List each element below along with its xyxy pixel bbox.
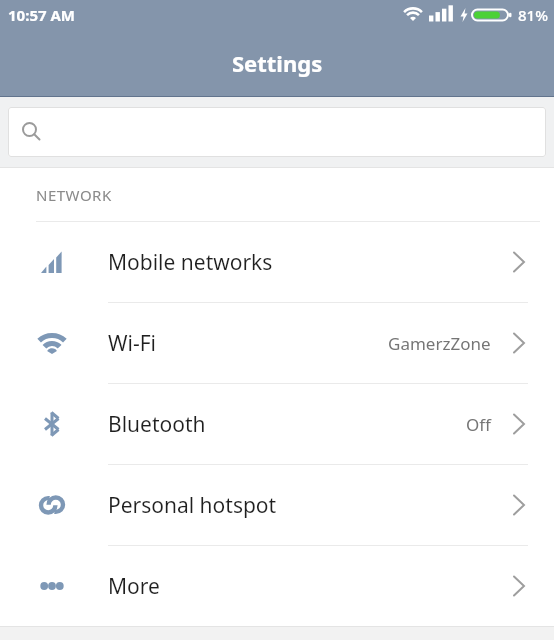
staticText: Bluetooth — [108, 410, 206, 439]
staticText: 10:57 AM — [8, 5, 75, 25]
button[interactable]: Personal hotspot — [0, 465, 554, 545]
staticText: 81% — [518, 5, 548, 25]
staticText: Off — [466, 413, 491, 436]
staticText: Wi-Fi — [108, 329, 157, 358]
button[interactable] — [8, 107, 546, 157]
staticText: More — [108, 572, 160, 601]
staticText: Settings — [232, 48, 323, 78]
staticText: GamerzZone — [388, 332, 491, 355]
button[interactable]: Bluetooth — [0, 384, 554, 464]
button[interactable]: Mobile networks — [0, 222, 554, 302]
button[interactable]: Wi-Fi — [0, 303, 554, 383]
button[interactable]: More — [0, 546, 554, 626]
staticText: NETWORK — [36, 185, 112, 205]
staticText: Mobile networks — [108, 248, 273, 277]
staticText: Personal hotspot — [108, 491, 277, 520]
